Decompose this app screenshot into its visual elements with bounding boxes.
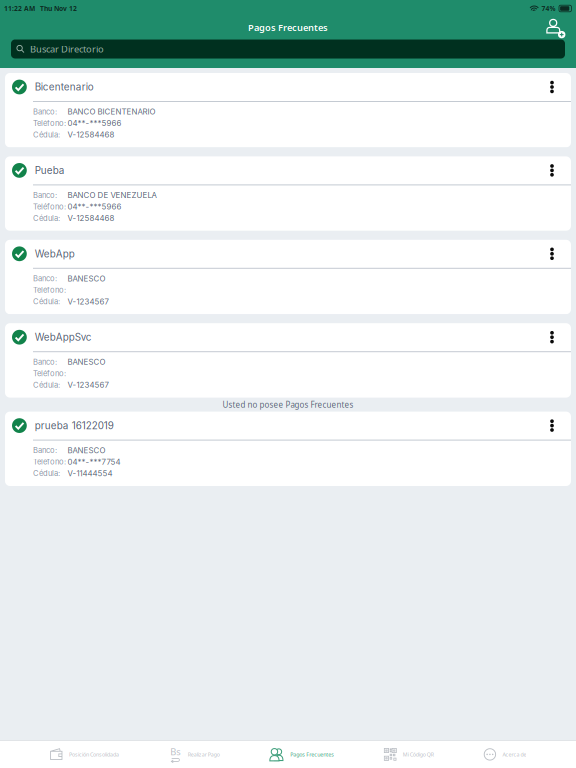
staticText: Acerca de [502,751,526,758]
staticText: Pueba [35,164,65,176]
staticText: Teléfono: [33,119,66,128]
staticText: V-12584468 [67,213,114,223]
staticText: Banco: [33,357,57,367]
staticText: Cédula: [33,214,60,223]
button[interactable]: WebAppSvc [5,323,571,351]
staticText: Teléfono: [33,369,66,378]
staticText: BANCO DE VENEZUELA [67,190,156,200]
staticText: Teléfono: [33,285,66,295]
button[interactable]: Mi Código QR [384,740,434,768]
staticText: BANESCO [67,446,105,455]
staticText: Realizar Pago [188,751,220,758]
button[interactable]: Bs [169,740,220,768]
staticText: Pagos Frecuentes [290,751,334,758]
staticText: Mi Código QR [403,751,434,758]
staticText: V-12584468 [67,130,114,139]
staticText: BANESCO [67,274,105,283]
staticText: WebAppSvc [35,331,92,343]
staticText: 04**-***7754 [67,457,120,467]
staticText: Usted no posee Pagos Frecuentes [222,399,353,410]
staticText: Teléfono: [33,202,66,211]
staticText: Banco: [33,446,57,455]
staticText: Cédula: [33,130,60,139]
staticText: Thu Nov 12 [40,4,77,13]
button[interactable]: Bicentenario [5,73,571,101]
staticText: Buscar Directorio [30,43,104,55]
button[interactable]: Posición Consolidada [50,740,119,768]
button[interactable]: Agregar contacto [542,15,568,39]
staticText: 04**-***5966 [67,202,121,211]
staticText: WebApp [35,248,75,260]
staticText: Teléfono: [33,457,66,466]
staticText: Bs [170,745,180,758]
staticText: V-1234567 [67,297,108,306]
button[interactable]: prueba 16122019 [5,412,571,440]
staticText: Pagos Frecuentes [248,21,328,34]
staticText: Cédula: [33,297,60,306]
staticText: V-1234567 [67,380,108,390]
button[interactable]: Pueba [5,156,571,184]
staticText: 04**-***5966 [67,118,121,128]
staticText: 11:22 AM [4,4,35,13]
staticText: Bicentenario [35,81,94,93]
staticText: Cédula: [33,380,60,390]
staticText: Cédula: [33,469,60,478]
staticText: BANESCO [67,357,105,367]
staticText: V-11444554 [67,469,112,478]
button[interactable]: WebApp [5,240,571,268]
staticText: Banco: [33,191,57,200]
staticText: Posición Consolidada [69,751,119,758]
staticText: Banco: [33,274,57,283]
button[interactable]: Buscar Directorio [11,39,565,58]
staticText: Banco: [33,107,57,116]
staticText: prueba 16122019 [35,420,114,431]
staticText: 74% [541,4,555,13]
staticText: BANCO BICENTENARIO [67,107,155,116]
button[interactable]: Pagos Frecuentes [269,740,334,768]
button[interactable]: Acerca de [483,740,526,768]
